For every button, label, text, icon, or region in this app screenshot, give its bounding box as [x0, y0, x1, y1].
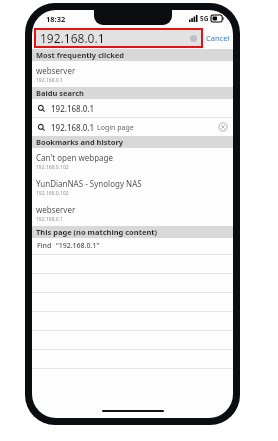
staticText: Find — [37, 241, 52, 251]
staticText: Most frequently clicked — [36, 50, 125, 60]
button[interactable]: webserver — [32, 61, 233, 87]
staticText: “192.168.0.1” — [56, 241, 100, 251]
button[interactable]: Find — [32, 238, 233, 254]
staticText: Can't open webpage — [36, 152, 114, 163]
button[interactable]: 192.168.0.1 — [32, 99, 233, 117]
staticText: 192.168.0.1 — [51, 122, 95, 133]
staticText: webserver — [36, 204, 76, 215]
staticText: Cancel — [206, 33, 230, 43]
staticText: Bookmarks and history — [36, 137, 124, 147]
staticText: 192.168.0.1 — [51, 103, 95, 114]
staticText: 18:32 — [46, 14, 66, 24]
staticText: 192.168.0.102 — [36, 164, 69, 171]
button[interactable]: 192.168.0.1 — [36, 30, 201, 46]
button[interactable]: Clear text — [190, 35, 197, 42]
staticText: 192.168.0.1 — [36, 216, 63, 223]
staticText: Baidu search — [36, 88, 84, 98]
staticText: 192.168.0.102 — [36, 190, 69, 197]
button[interactable]: webserver — [32, 200, 233, 226]
staticText: 192.168.0.1 — [36, 77, 63, 84]
staticText: Login page — [97, 123, 134, 133]
staticText: This page (no matching content) — [36, 227, 158, 237]
button[interactable]: 192.168.0.1 — [32, 118, 233, 136]
button[interactable]: YunDianNAS - Synology NAS — [32, 174, 233, 200]
staticText: YunDianNAS - Synology NAS — [36, 178, 142, 189]
button[interactable]: Remove suggestion — [218, 122, 228, 132]
staticText: 192.168.0.1 — [40, 30, 105, 46]
button[interactable]: Cancel — [203, 28, 233, 48]
staticText: webserver — [36, 65, 76, 76]
button[interactable]: Can't open webpage — [32, 148, 233, 174]
staticText: 5G — [200, 14, 209, 23]
